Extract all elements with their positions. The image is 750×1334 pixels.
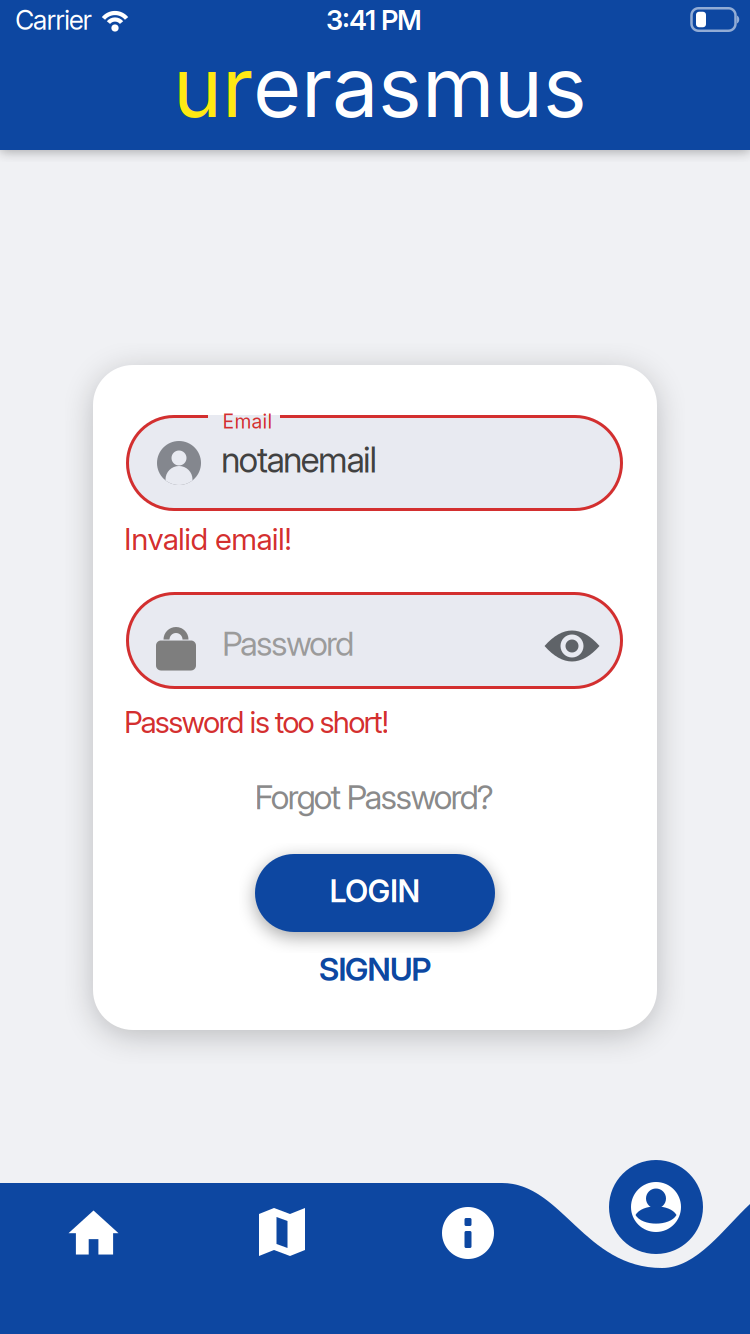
button[interactable]: Profile bbox=[609, 1160, 703, 1254]
button[interactable]: Home bbox=[68, 1210, 118, 1254]
staticText: erasmus bbox=[253, 37, 587, 137]
staticText: ur bbox=[173, 37, 253, 137]
staticText: Password bbox=[222, 623, 354, 664]
button[interactable]: Map bbox=[259, 1208, 305, 1256]
staticText: Carrier bbox=[15, 4, 92, 36]
staticText: notanemail bbox=[221, 439, 377, 481]
staticText: SIGNUP bbox=[319, 950, 431, 988]
staticText: Forgot Password? bbox=[254, 777, 493, 817]
button[interactable]: Forgot Password? bbox=[254, 777, 493, 817]
button[interactable]: Show password bbox=[544, 628, 599, 664]
staticText: 3:41 PM bbox=[326, 3, 422, 37]
staticText: Password is too short! bbox=[124, 704, 389, 740]
button[interactable]: Info bbox=[442, 1207, 494, 1259]
button[interactable]: Password bbox=[126, 592, 623, 689]
button[interactable]: SIGNUP bbox=[319, 950, 431, 988]
button[interactable]: Email bbox=[126, 415, 623, 511]
staticText: Invalid email! bbox=[124, 521, 292, 557]
staticText: LOGIN bbox=[329, 872, 420, 909]
button[interactable]: Login bbox=[255, 854, 495, 932]
staticText: Email bbox=[222, 410, 272, 433]
